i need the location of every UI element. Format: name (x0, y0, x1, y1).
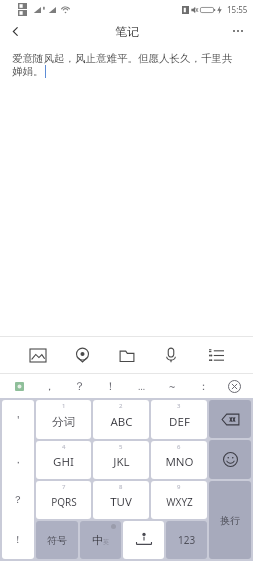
staticText: TUV (110, 494, 132, 510)
button[interactable]: Attach file (110, 338, 144, 372)
button[interactable]: 8 (93, 481, 149, 519)
staticText: 7 (62, 483, 66, 491)
staticText: 婵娟。 (12, 65, 44, 78)
button[interactable]: 符号 (36, 521, 78, 559)
button[interactable]: 123 (166, 521, 207, 559)
button[interactable]: 5 (93, 441, 149, 479)
button[interactable]: ' (2, 400, 34, 439)
staticText: 符号 (47, 534, 67, 547)
staticText: 换行 (220, 514, 240, 527)
staticText: 中 (92, 533, 103, 547)
staticText: ' (17, 412, 20, 427)
button[interactable]: ！ (2, 519, 34, 559)
button[interactable]: Switch Chinese English (80, 521, 121, 559)
staticText: ！ (105, 379, 116, 393)
staticText: 4 (62, 443, 66, 451)
staticText: 9 (177, 483, 181, 491)
staticText: ？ (13, 493, 23, 506)
button[interactable]: Back (0, 18, 30, 44)
staticText: ~ (169, 379, 176, 394)
staticText: 1 (62, 402, 66, 410)
staticText: DEF (169, 414, 190, 430)
button[interactable]: Location (65, 338, 99, 372)
staticText: MNO (165, 454, 194, 470)
staticText: 15:55 (227, 4, 248, 15)
button[interactable]: Voice input (154, 338, 188, 372)
button[interactable]: 爱意随风起，风止意难平。但愿人长久，千里共 (0, 44, 253, 336)
button[interactable]: ？ (64, 374, 95, 398)
button[interactable]: Emoji keyboard (209, 440, 251, 479)
button[interactable]: Backspace (209, 400, 251, 438)
button[interactable]: More options (223, 18, 253, 44)
button[interactable]: 2 (93, 400, 149, 439)
button[interactable]: 7 (36, 481, 91, 519)
button[interactable]: ， (34, 374, 64, 398)
button[interactable]: ， (2, 439, 34, 479)
button[interactable]: … (126, 374, 157, 398)
staticText: WXYZ (166, 495, 193, 509)
button[interactable]: ~ (157, 374, 188, 398)
staticText: ！ (13, 533, 23, 546)
button[interactable]: 1 (36, 400, 91, 439)
staticText: 123 (178, 533, 196, 547)
button[interactable]: ： (188, 374, 219, 398)
staticText: … (138, 380, 146, 392)
staticText: ABC (110, 414, 133, 430)
staticText: GHI (53, 454, 74, 470)
button[interactable]: 3 (151, 400, 207, 439)
staticText: 爱意随风起，风止意难平。但愿人长久，千里共 (12, 52, 233, 65)
button[interactable]: 4 (36, 441, 91, 479)
staticText: JKL (113, 454, 130, 470)
staticText: 8 (119, 483, 123, 491)
button[interactable]: Checklist (199, 338, 233, 372)
staticText: 笔记 (115, 24, 139, 39)
button[interactable]: 9 (151, 481, 207, 519)
staticText: 3 (177, 402, 181, 410)
staticText: 6 (177, 443, 181, 451)
staticText: 2 (119, 402, 123, 410)
staticText: 分词 (52, 415, 75, 429)
staticText: PQRS (51, 495, 77, 509)
button[interactable]: 换行 (209, 481, 251, 559)
staticText: ， (13, 453, 23, 466)
button[interactable]: Close candidates (223, 375, 245, 397)
staticText: 英 (103, 538, 109, 546)
button[interactable]: ？ (2, 479, 34, 519)
button[interactable]: Insert image (21, 338, 55, 372)
staticText: ： (198, 379, 209, 393)
button[interactable]: 6 (151, 441, 207, 479)
staticText: 5 (119, 443, 123, 451)
button[interactable]: Space (123, 521, 164, 559)
button[interactable]: ！ (95, 374, 126, 398)
staticText: ？ (74, 379, 85, 393)
staticText: ， (44, 379, 55, 393)
button[interactable]: Emoji (4, 374, 34, 398)
